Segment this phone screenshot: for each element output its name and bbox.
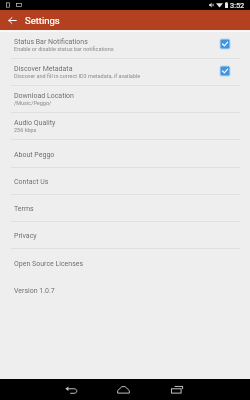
button[interactable]: Home <box>107 379 139 400</box>
staticText: Contact Us <box>14 178 49 186</box>
button[interactable]: Navigate up <box>0 10 24 30</box>
staticText: Version 1.0.7 <box>14 287 55 295</box>
staticText: Terms <box>14 205 34 213</box>
button[interactable]: Back <box>55 379 87 400</box>
staticText: Enable or disable status bar notificatio… <box>14 46 114 52</box>
staticText: About Peggo <box>14 151 55 159</box>
staticText: Settings <box>25 15 60 26</box>
button[interactable]: Recent apps <box>161 379 193 400</box>
button[interactable]: Version 1.0.7 <box>0 276 250 303</box>
staticText: Open Source Licenses <box>14 260 84 268</box>
button[interactable]: Terms <box>0 195 250 221</box>
staticText: Discover and fill in correct ID3 metadat… <box>14 73 141 79</box>
button[interactable]: About Peggo <box>0 140 250 167</box>
button[interactable]: Discover Metadata <box>0 59 250 85</box>
staticText: Status Bar Notifications <box>14 38 88 46</box>
button[interactable]: Toggle Status Bar Notifications <box>219 38 231 50</box>
button[interactable]: Audio Quality <box>0 113 250 139</box>
button[interactable]: Open Source Licenses <box>0 249 250 276</box>
button[interactable]: Status Bar Notifications <box>0 32 250 58</box>
button[interactable]: Toggle Discover Metadata <box>219 65 231 77</box>
staticText: /Music/Peggo/ <box>14 100 52 106</box>
staticText: 3:52 <box>230 1 245 10</box>
staticText: Privacy <box>14 232 37 240</box>
staticText: 256 kbps <box>14 127 37 133</box>
button[interactable]: Privacy <box>0 222 250 248</box>
staticText: Download Location <box>14 92 74 100</box>
staticText: Discover Metadata <box>14 65 73 73</box>
staticText: Audio Quality <box>14 119 56 127</box>
button[interactable]: Contact Us <box>0 168 250 194</box>
button[interactable]: Download Location <box>0 86 250 112</box>
